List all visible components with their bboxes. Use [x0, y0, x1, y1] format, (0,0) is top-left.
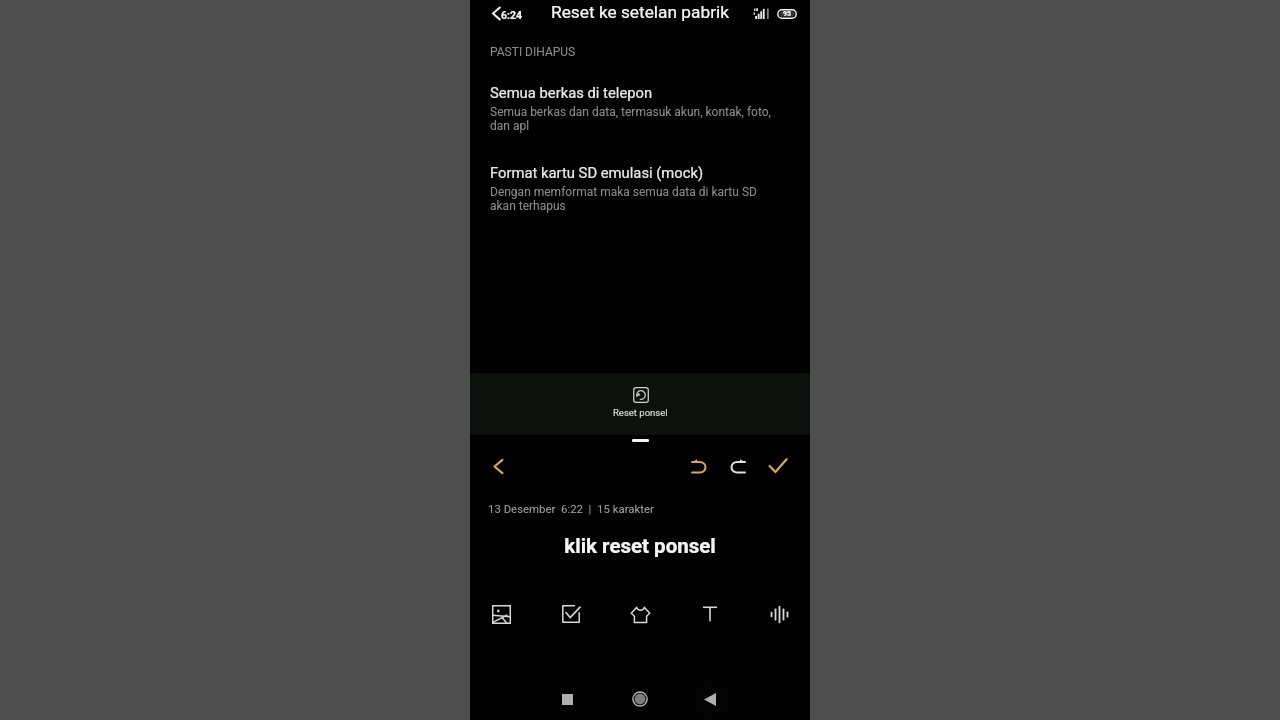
staticText: Semua berkas dan data, termasuk akun, ko…: [490, 105, 771, 133]
staticText: PASTI DIHAPUS: [490, 45, 576, 59]
button[interactable]: klik reset ponsel: [470, 527, 810, 565]
staticText: Dengan memformat maka semua data di kart…: [490, 185, 757, 213]
button[interactable]: Checklist: [556, 599, 586, 629]
button[interactable]: Insert image: [486, 599, 516, 629]
button[interactable]: Style: [625, 599, 655, 629]
button[interactable]: Redo: [723, 451, 753, 481]
button[interactable]: Back: [693, 682, 727, 716]
staticText: klik reset ponsel: [470, 534, 810, 558]
button[interactable]: Back: [484, 452, 512, 480]
staticText: Reset ponsel: [613, 407, 668, 418]
staticText: Format kartu SD emulasi (mock): [490, 164, 704, 181]
staticText: Reset ke setelan pabrik: [551, 2, 729, 22]
button[interactable]: Home: [623, 682, 657, 716]
button[interactable]: Undo: [683, 451, 713, 481]
button[interactable]: Voice: [764, 599, 794, 629]
button[interactable]: Reset ponsel: [470, 373, 810, 435]
staticText: 13 Desember 6:22 | 15 karakter: [488, 502, 654, 515]
staticText: 6:24: [501, 9, 523, 21]
button[interactable]: Text format: [695, 599, 725, 629]
staticText: 95: [783, 10, 792, 18]
button[interactable]: Save: [763, 451, 793, 481]
button[interactable]: Recent apps: [550, 682, 584, 716]
button[interactable]: Back: [491, 6, 523, 21]
button[interactable]: Format kartu SD emulasi (mock): [470, 151, 810, 226]
button[interactable]: Semua berkas di telepon: [470, 71, 810, 146]
staticText: Semua berkas di telepon: [490, 84, 653, 101]
